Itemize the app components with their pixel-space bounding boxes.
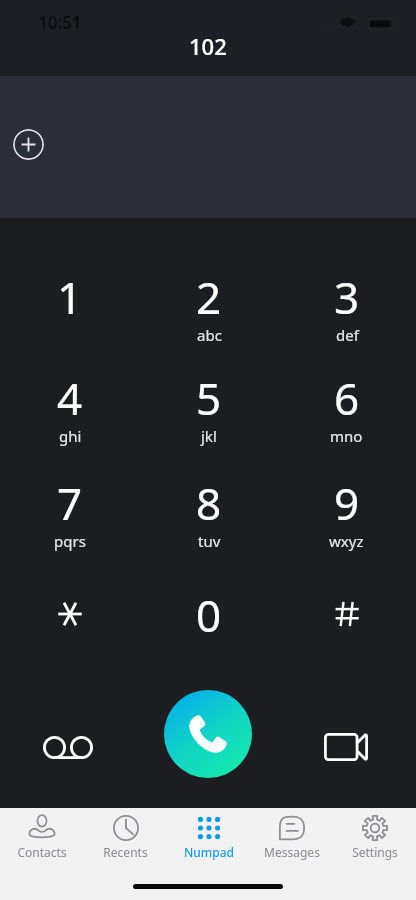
- staticText: mno: [330, 426, 363, 446]
- button[interactable]: Contacts: [0, 808, 84, 866]
- button[interactable]: 8: [139, 473, 278, 559]
- staticText: 5: [196, 368, 222, 428]
- staticText: 0: [196, 585, 222, 645]
- button[interactable]: Pound: [277, 585, 416, 657]
- button[interactable]: Numpad: [167, 808, 250, 866]
- staticText: 8: [196, 473, 222, 533]
- staticText: 102: [189, 31, 227, 61]
- button[interactable]: Star: [0, 585, 139, 657]
- staticText: jkl: [201, 426, 217, 446]
- button[interactable]: 7: [0, 473, 139, 559]
- staticText: abc: [197, 325, 222, 345]
- button[interactable]: Call: [164, 690, 252, 778]
- staticText: 10:51: [38, 11, 82, 34]
- button[interactable]: 1: [0, 267, 139, 353]
- staticText: 7: [57, 473, 83, 533]
- button[interactable]: Voicemail: [40, 719, 96, 775]
- button[interactable]: 9: [277, 473, 416, 559]
- button[interactable]: 6: [277, 368, 416, 454]
- button[interactable]: Messages: [250, 808, 333, 866]
- button[interactable]: 5: [139, 368, 278, 454]
- staticText: ghi: [59, 426, 82, 446]
- button[interactable]: Recents: [84, 808, 167, 866]
- button[interactable]: Add number: [13, 129, 44, 160]
- button[interactable]: 0: [139, 585, 278, 657]
- staticText: wxyz: [329, 531, 364, 551]
- staticText: 9: [334, 473, 360, 533]
- staticText: 2: [196, 267, 222, 327]
- staticText: 1: [57, 267, 83, 327]
- button[interactable]: 4: [0, 368, 139, 454]
- staticText: def: [336, 325, 359, 345]
- staticText: 6: [334, 368, 360, 428]
- button[interactable]: 2: [139, 267, 278, 353]
- staticText: 3: [334, 267, 360, 327]
- staticText: pqrs: [54, 531, 86, 551]
- staticText: Recents: [103, 844, 148, 860]
- staticText: Numpad: [184, 844, 234, 860]
- button[interactable]: Settings: [333, 808, 416, 866]
- button[interactable]: 3: [277, 267, 416, 353]
- staticText: Contacts: [17, 844, 67, 860]
- staticText: 4: [57, 368, 83, 428]
- staticText: Settings: [352, 844, 398, 860]
- staticText: Messages: [264, 844, 320, 860]
- staticText: tuv: [198, 531, 221, 551]
- button[interactable]: Video call: [318, 719, 374, 775]
